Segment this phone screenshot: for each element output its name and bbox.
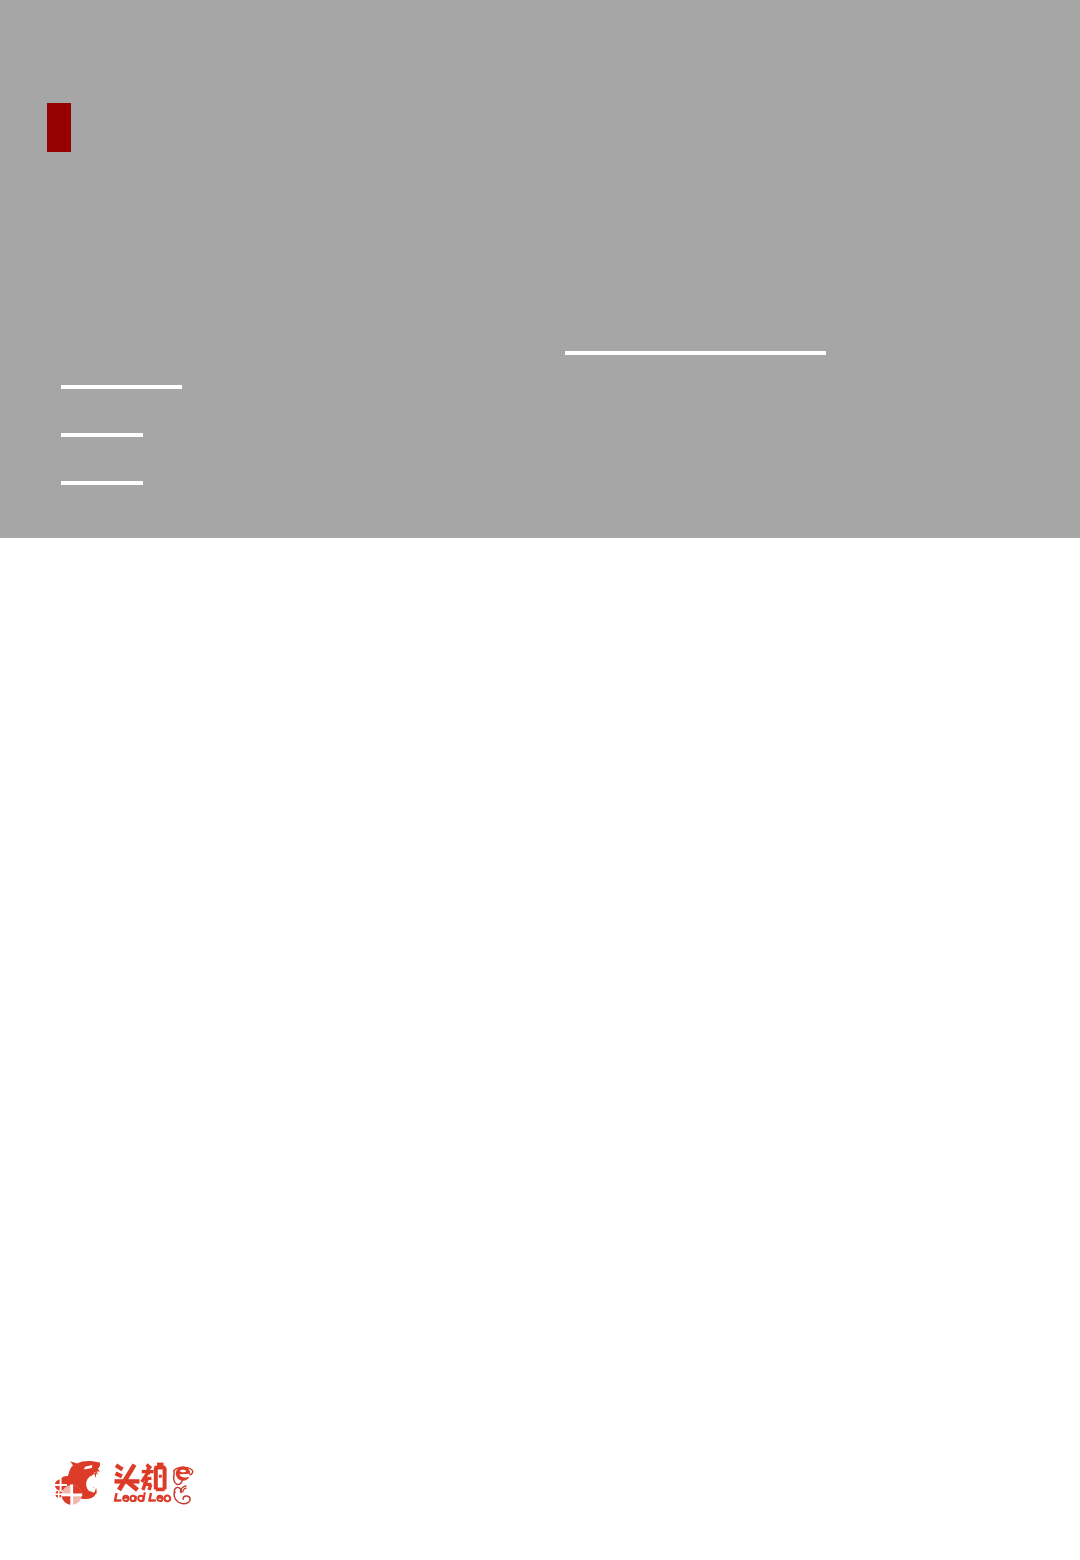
button[interactable]: LeadLeo 头豹 logo: [54, 1460, 193, 1506]
button[interactable]: Cover header: [0, 0, 1080, 538]
other: Report cover page: [0, 0, 1080, 1560]
